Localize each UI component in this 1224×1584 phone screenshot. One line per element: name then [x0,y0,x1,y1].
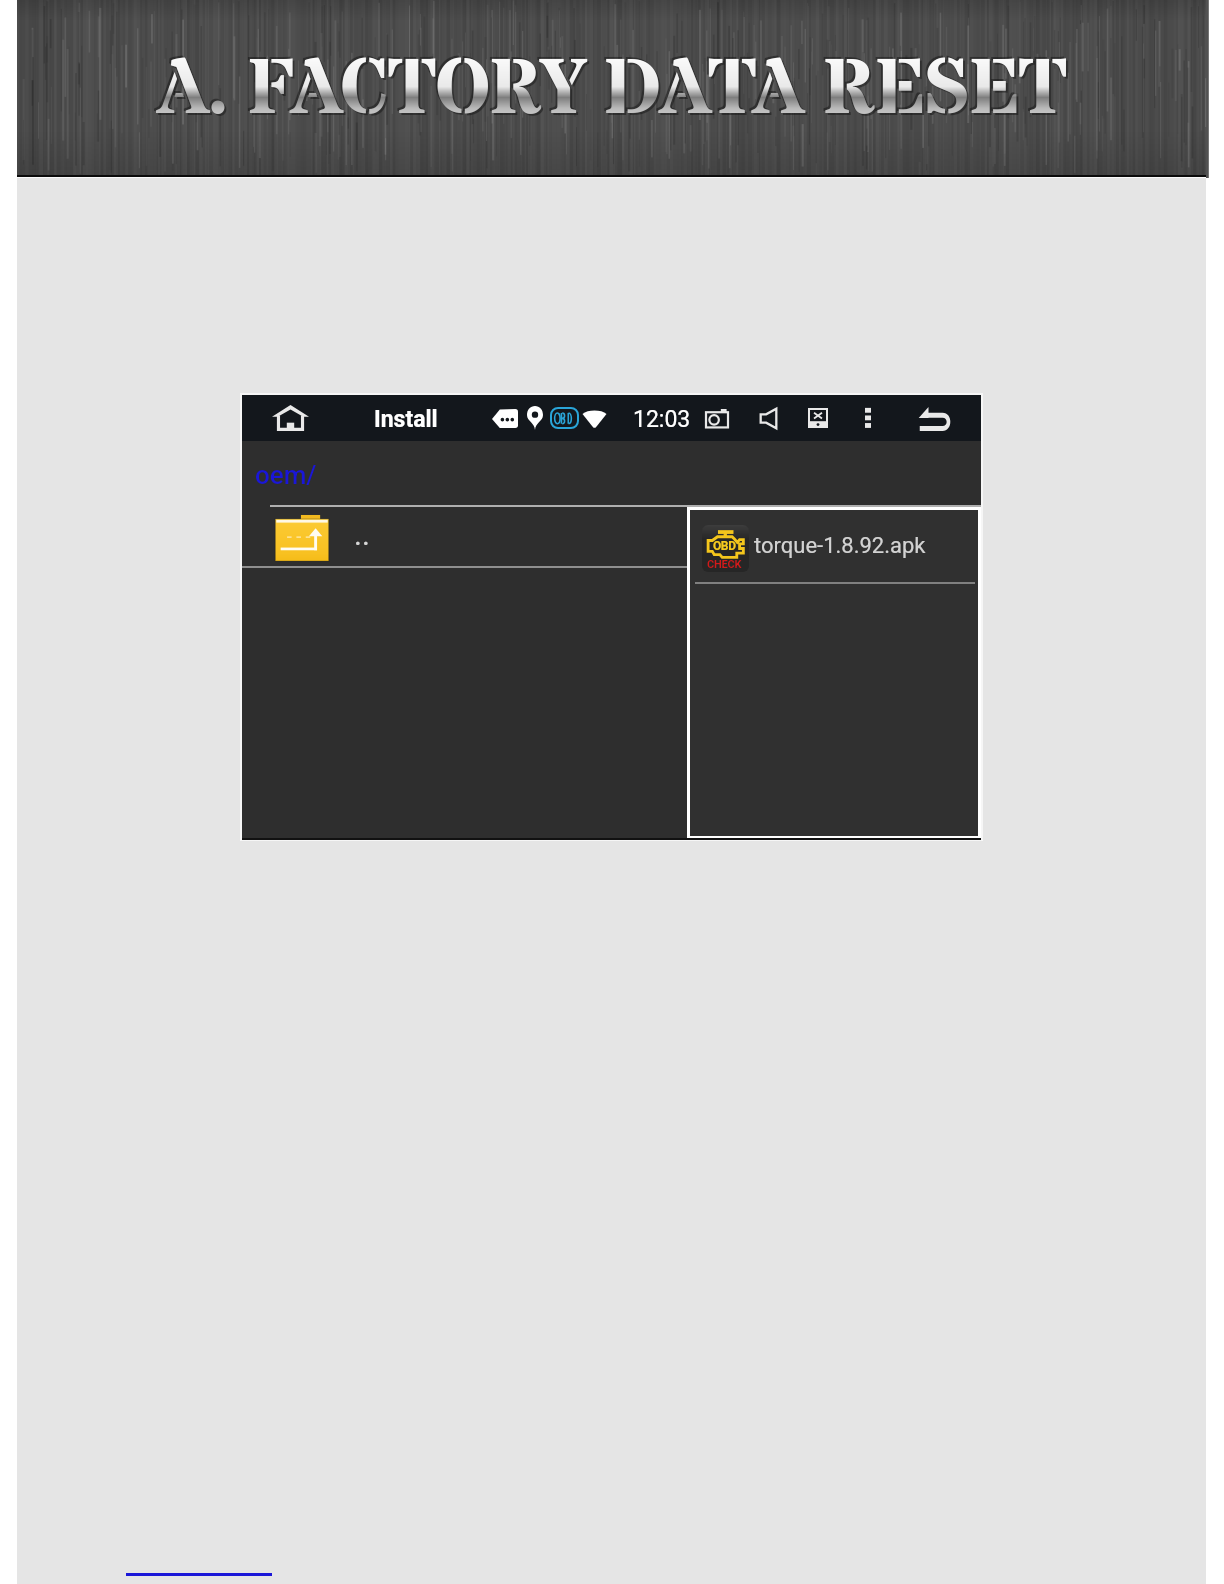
staticText: A. FACTORY DATA RESET [17,37,1206,145]
staticText: A. FACTORY DATA RESET [19,39,1208,147]
staticText: OBD [713,539,736,553]
button[interactable]: Back [908,401,963,435]
staticText: Install [374,406,438,433]
button[interactable]: Mute [750,402,786,434]
button[interactable]: Screen off [800,402,836,434]
staticText: oem/ [255,460,317,490]
staticText: torque-1.8.92.apk [754,533,926,559]
button[interactable]: More options [854,402,882,434]
staticText: .. [354,517,370,552]
button[interactable]: OBD [687,507,981,583]
staticText: 12:03 [633,406,691,433]
button[interactable]: .. [242,507,953,566]
button[interactable]: Home [265,399,315,437]
staticText: CHECK [707,558,742,571]
staticText: A. FACTORY DATA RESET [15,35,1204,143]
button[interactable]: Screenshot [697,402,737,434]
